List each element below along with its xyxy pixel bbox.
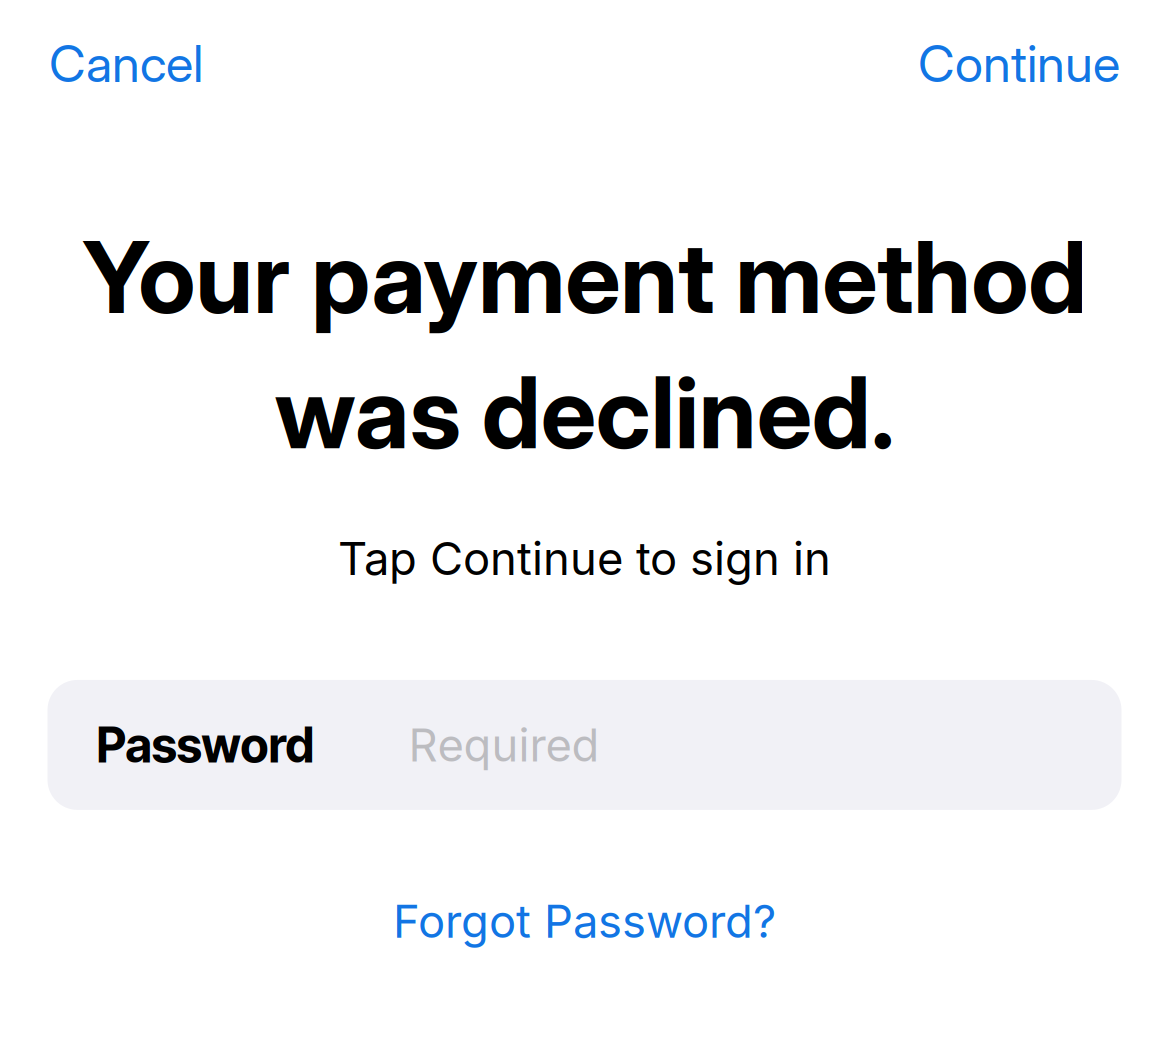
button[interactable]: Password	[47, 680, 1121, 810]
staticText: Cancel	[49, 33, 203, 94]
staticText: Your payment method was declined.	[82, 217, 1087, 472]
staticText: Required	[408, 717, 599, 772]
staticText: Continue	[918, 33, 1120, 94]
button[interactable]: Cancel	[33, 19, 219, 108]
button[interactable]: Continue	[902, 19, 1136, 108]
staticText: Forgot Password?	[393, 894, 776, 949]
staticText: Tap Continue to sign in	[338, 531, 831, 586]
staticText: Password	[96, 716, 314, 774]
button[interactable]: Forgot Password?	[369, 878, 800, 965]
